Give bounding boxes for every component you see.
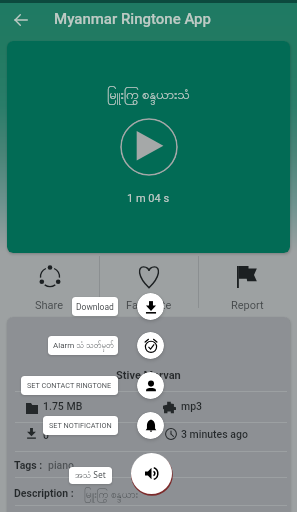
staticText: အသံ Set: [75, 469, 106, 482]
button[interactable]: SET CONTACT RINGTONE: [137, 372, 164, 399]
button[interactable]: Play: [120, 118, 178, 176]
button[interactable]: SET NOTIFICATION: [43, 416, 118, 435]
staticText: SET NOTIFICATION: [49, 421, 112, 430]
button[interactable]: SET NOTIFICATION: [137, 412, 164, 439]
staticText: 1.75 MB: [43, 400, 83, 412]
button[interactable]: Alarm သံ သတ်မှတ်: [137, 332, 164, 359]
button[interactable]: Download: [72, 297, 118, 316]
button[interactable]: Set as ringtone: [131, 453, 172, 494]
button[interactable]: Report: [198, 253, 297, 317]
button[interactable]: Favourite: [99, 253, 198, 317]
staticText: Myanmar Ringtone App: [54, 10, 211, 28]
button[interactable]: Alarm သံ သတ်မှတ်: [48, 336, 118, 355]
staticText: SET CONTACT RINGTONE: [27, 381, 112, 390]
staticText: Description :: [14, 487, 74, 499]
staticText: Stive Marvan: [116, 369, 181, 382]
button[interactable]: Back: [6, 5, 35, 34]
staticText: Favourite: [126, 299, 172, 312]
staticText: Report: [231, 299, 264, 312]
staticText: Share: [35, 299, 64, 312]
staticText: 0: [43, 429, 49, 441]
button[interactable]: Download: [137, 293, 164, 320]
staticText: 1 m 04 s: [127, 192, 170, 205]
button[interactable]: Share: [0, 253, 99, 317]
staticText: မြူးကြွ စန္ဒယား: [84, 487, 139, 503]
staticText: Download: [76, 302, 114, 312]
staticText: mp3: [181, 400, 203, 412]
staticText: 3 minutes ago: [181, 428, 248, 440]
staticText: Alarm သံ သတ်မှတ်: [53, 340, 114, 352]
button[interactable]: အသံ Set: [69, 467, 112, 484]
staticText: မြူးကြွ စန္ဒယားသံ: [107, 85, 190, 105]
button[interactable]: SET CONTACT RINGTONE: [21, 376, 118, 395]
staticText: Tags :: [14, 459, 43, 471]
staticText: piano: [48, 459, 75, 471]
